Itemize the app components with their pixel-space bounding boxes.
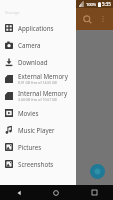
staticText: 5:35 bbox=[102, 1, 111, 7]
button[interactable]: External Memory bbox=[0, 70, 76, 87]
button[interactable]: Screenshots bbox=[0, 155, 76, 172]
staticText: Music Player bbox=[18, 126, 55, 134]
button[interactable]: Movies bbox=[0, 104, 76, 121]
staticText: Applications bbox=[18, 24, 54, 32]
button[interactable]: Music Player bbox=[0, 121, 76, 138]
button[interactable]: Back bbox=[0, 185, 37, 200]
button[interactable]: Download bbox=[0, 53, 76, 70]
staticText: Storage bbox=[5, 10, 20, 15]
staticText: Movies bbox=[18, 109, 39, 117]
staticText: External Memory bbox=[18, 72, 68, 80]
staticText: Camera bbox=[18, 41, 41, 49]
staticText: 3.44 GB free of 10.67 GB bbox=[18, 97, 57, 102]
staticText: Pictures bbox=[18, 143, 42, 151]
button[interactable]: Internal Memory bbox=[0, 87, 76, 104]
button[interactable]: Add bbox=[90, 164, 105, 179]
staticText: Screenshots bbox=[18, 160, 54, 168]
button[interactable]: Recent apps bbox=[75, 185, 113, 200]
staticText: 100% bbox=[86, 2, 97, 7]
button[interactable]: Camera bbox=[0, 36, 76, 53]
button[interactable]: Applications bbox=[0, 19, 76, 36]
staticText: Download bbox=[18, 58, 48, 66]
staticText: Internal Memory bbox=[18, 89, 68, 97]
staticText: 8.91 GB free of 14.65 GB bbox=[18, 80, 57, 85]
button[interactable]: More options bbox=[96, 12, 110, 26]
button[interactable]: Search bbox=[78, 10, 96, 28]
button[interactable]: Pictures bbox=[0, 138, 76, 155]
button[interactable]: Home bbox=[37, 185, 75, 200]
